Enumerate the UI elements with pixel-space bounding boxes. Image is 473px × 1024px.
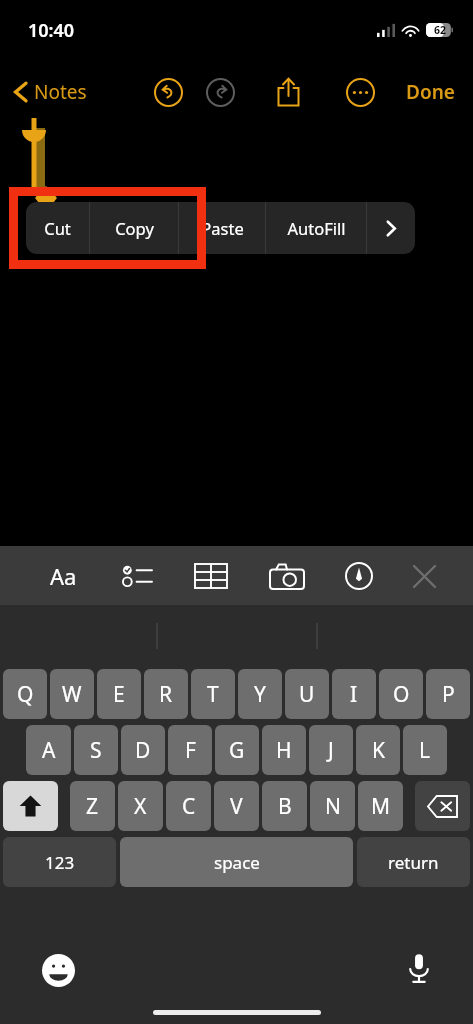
- button[interactable]: O: [379, 669, 423, 719]
- button[interactable]: Shift: [3, 781, 58, 831]
- staticText: V: [230, 792, 243, 821]
- staticText: 10:40: [28, 18, 75, 43]
- button[interactable]: T: [191, 669, 235, 719]
- staticText: S: [90, 736, 102, 765]
- staticText: J: [328, 736, 334, 765]
- button[interactable]: Paste: [179, 202, 265, 254]
- button[interactable]: Z: [70, 781, 115, 831]
- button[interactable]: Table: [187, 552, 235, 600]
- button[interactable]: E: [97, 669, 141, 719]
- button[interactable]: G: [215, 725, 259, 775]
- staticText: Done: [406, 79, 455, 105]
- button[interactable]: More options: [337, 69, 383, 115]
- staticText: Q: [17, 680, 34, 709]
- button[interactable]: Copy: [90, 202, 178, 254]
- staticText: C: [182, 792, 196, 821]
- button[interactable]: F: [168, 725, 212, 775]
- button[interactable]: C: [166, 781, 211, 831]
- button[interactable]: B: [262, 781, 307, 831]
- staticText: Y: [254, 680, 266, 709]
- button[interactable]: Notes: [10, 73, 91, 111]
- staticText: Cut: [44, 217, 71, 239]
- button[interactable]: Close keyboard: [400, 552, 448, 600]
- staticText: 62: [434, 23, 447, 37]
- staticText: X: [134, 792, 147, 821]
- button[interactable]: W: [50, 669, 94, 719]
- button[interactable]: D: [121, 725, 165, 775]
- button[interactable]: Delete: [415, 781, 470, 831]
- button[interactable]: R: [144, 669, 188, 719]
- button[interactable]: H: [262, 725, 306, 775]
- button[interactable]: Undo: [145, 69, 191, 115]
- button[interactable]: V: [214, 781, 259, 831]
- button[interactable]: M: [358, 781, 403, 831]
- button[interactable]: P: [426, 669, 470, 719]
- staticText: AutoFill: [287, 217, 346, 239]
- button[interactable]: J: [309, 725, 353, 775]
- staticText: H: [276, 736, 292, 765]
- button[interactable]: Markup: [335, 552, 383, 600]
- staticText: O: [393, 680, 410, 709]
- button[interactable]: Checklist: [113, 552, 161, 600]
- staticText: M: [371, 792, 391, 821]
- button[interactable]: L: [403, 725, 447, 775]
- button[interactable]: N: [310, 781, 355, 831]
- button[interactable]: X: [118, 781, 163, 831]
- staticText: K: [372, 736, 385, 765]
- staticText: G: [229, 736, 245, 765]
- staticText: A: [42, 736, 56, 765]
- button[interactable]: A: [26, 725, 71, 775]
- button[interactable]: Q: [3, 669, 47, 719]
- button[interactable]: Camera: [263, 552, 311, 600]
- button[interactable]: Y: [238, 669, 282, 719]
- button[interactable]: Done: [400, 73, 461, 111]
- button[interactable]: Redo: [197, 69, 243, 115]
- staticText: Aa: [50, 561, 77, 591]
- staticText: W: [62, 680, 82, 709]
- staticText: E: [113, 680, 125, 709]
- button[interactable]: Emoji: [34, 946, 82, 994]
- button[interactable]: Share: [265, 69, 311, 115]
- button[interactable]: Text format: [39, 552, 87, 600]
- staticText: Notes: [34, 79, 87, 105]
- staticText: U: [299, 680, 315, 709]
- staticText: T: [207, 680, 219, 709]
- staticText: R: [159, 680, 173, 709]
- button[interactable]: Cut: [26, 202, 89, 254]
- staticText: L: [419, 736, 431, 765]
- staticText: I: [350, 680, 358, 709]
- button[interactable]: I: [332, 669, 376, 719]
- button[interactable]: S: [74, 725, 118, 775]
- button[interactable]: K: [356, 725, 400, 775]
- staticText: 123: [45, 851, 75, 874]
- button[interactable]: More actions: [367, 202, 415, 254]
- button[interactable]: 123: [3, 837, 116, 887]
- staticText: D: [135, 736, 151, 765]
- button[interactable]: return: [357, 837, 470, 887]
- staticText: Copy: [115, 217, 154, 239]
- button[interactable]: space: [120, 837, 353, 887]
- staticText: space: [214, 851, 260, 874]
- staticText: N: [325, 792, 341, 821]
- staticText: Z: [86, 792, 99, 821]
- staticText: Paste: [201, 217, 244, 239]
- staticText: return: [388, 851, 439, 874]
- button[interactable]: U: [285, 669, 329, 719]
- staticText: B: [278, 792, 292, 821]
- staticText: F: [185, 736, 196, 765]
- button[interactable]: Dictate: [395, 944, 443, 992]
- staticText: P: [442, 680, 455, 709]
- button[interactable]: AutoFill: [266, 202, 366, 254]
